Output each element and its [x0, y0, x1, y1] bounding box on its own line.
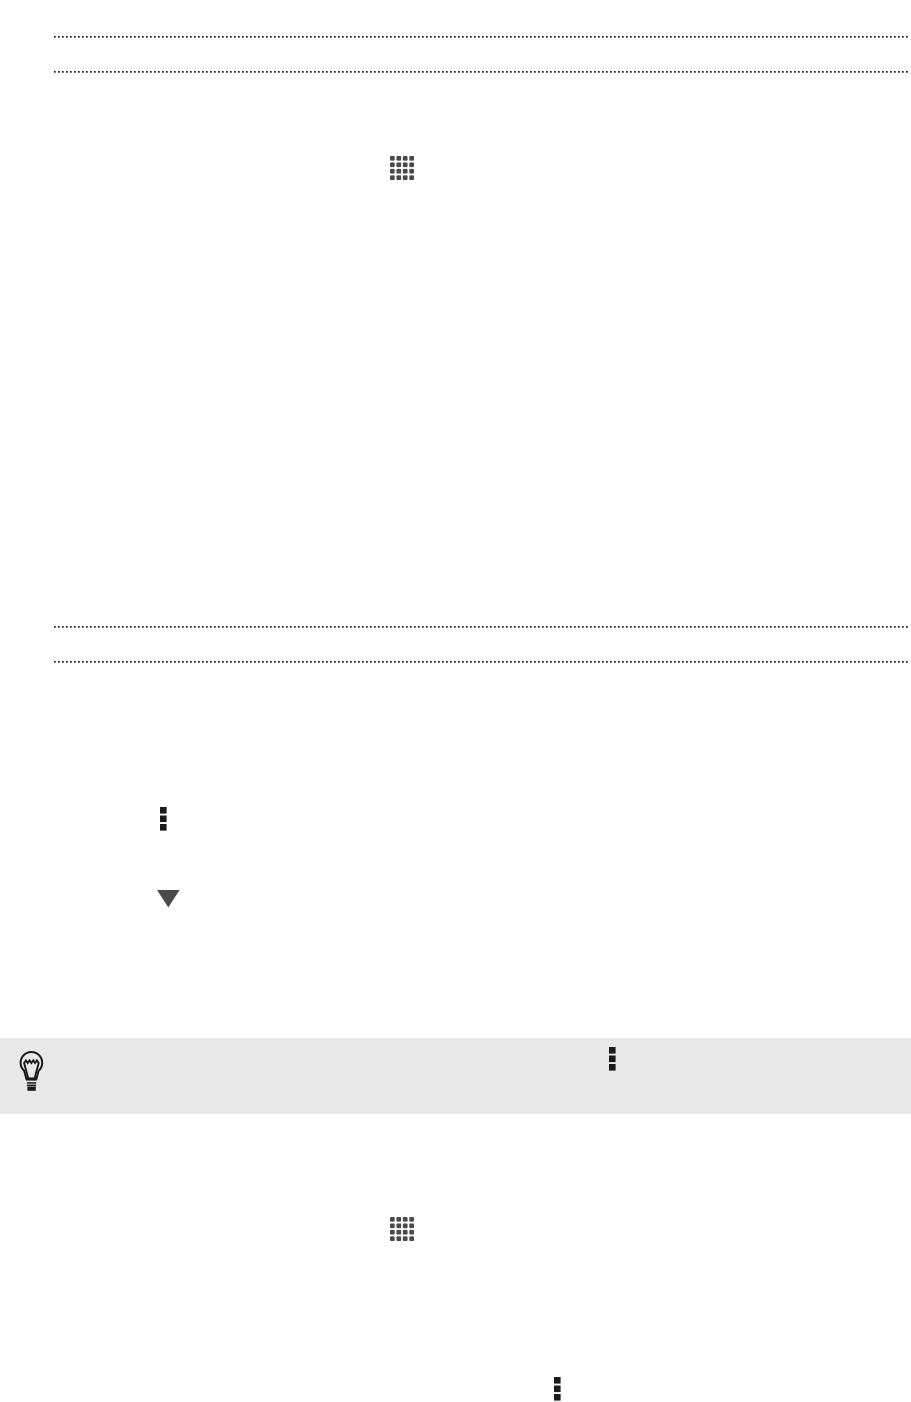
button[interactable]: More options	[554, 1377, 561, 1401]
button[interactable]: All apps	[390, 1217, 414, 1241]
button[interactable]: More options	[160, 807, 167, 831]
button[interactable]: More options	[609, 1047, 616, 1071]
button[interactable]: All apps	[390, 156, 414, 180]
